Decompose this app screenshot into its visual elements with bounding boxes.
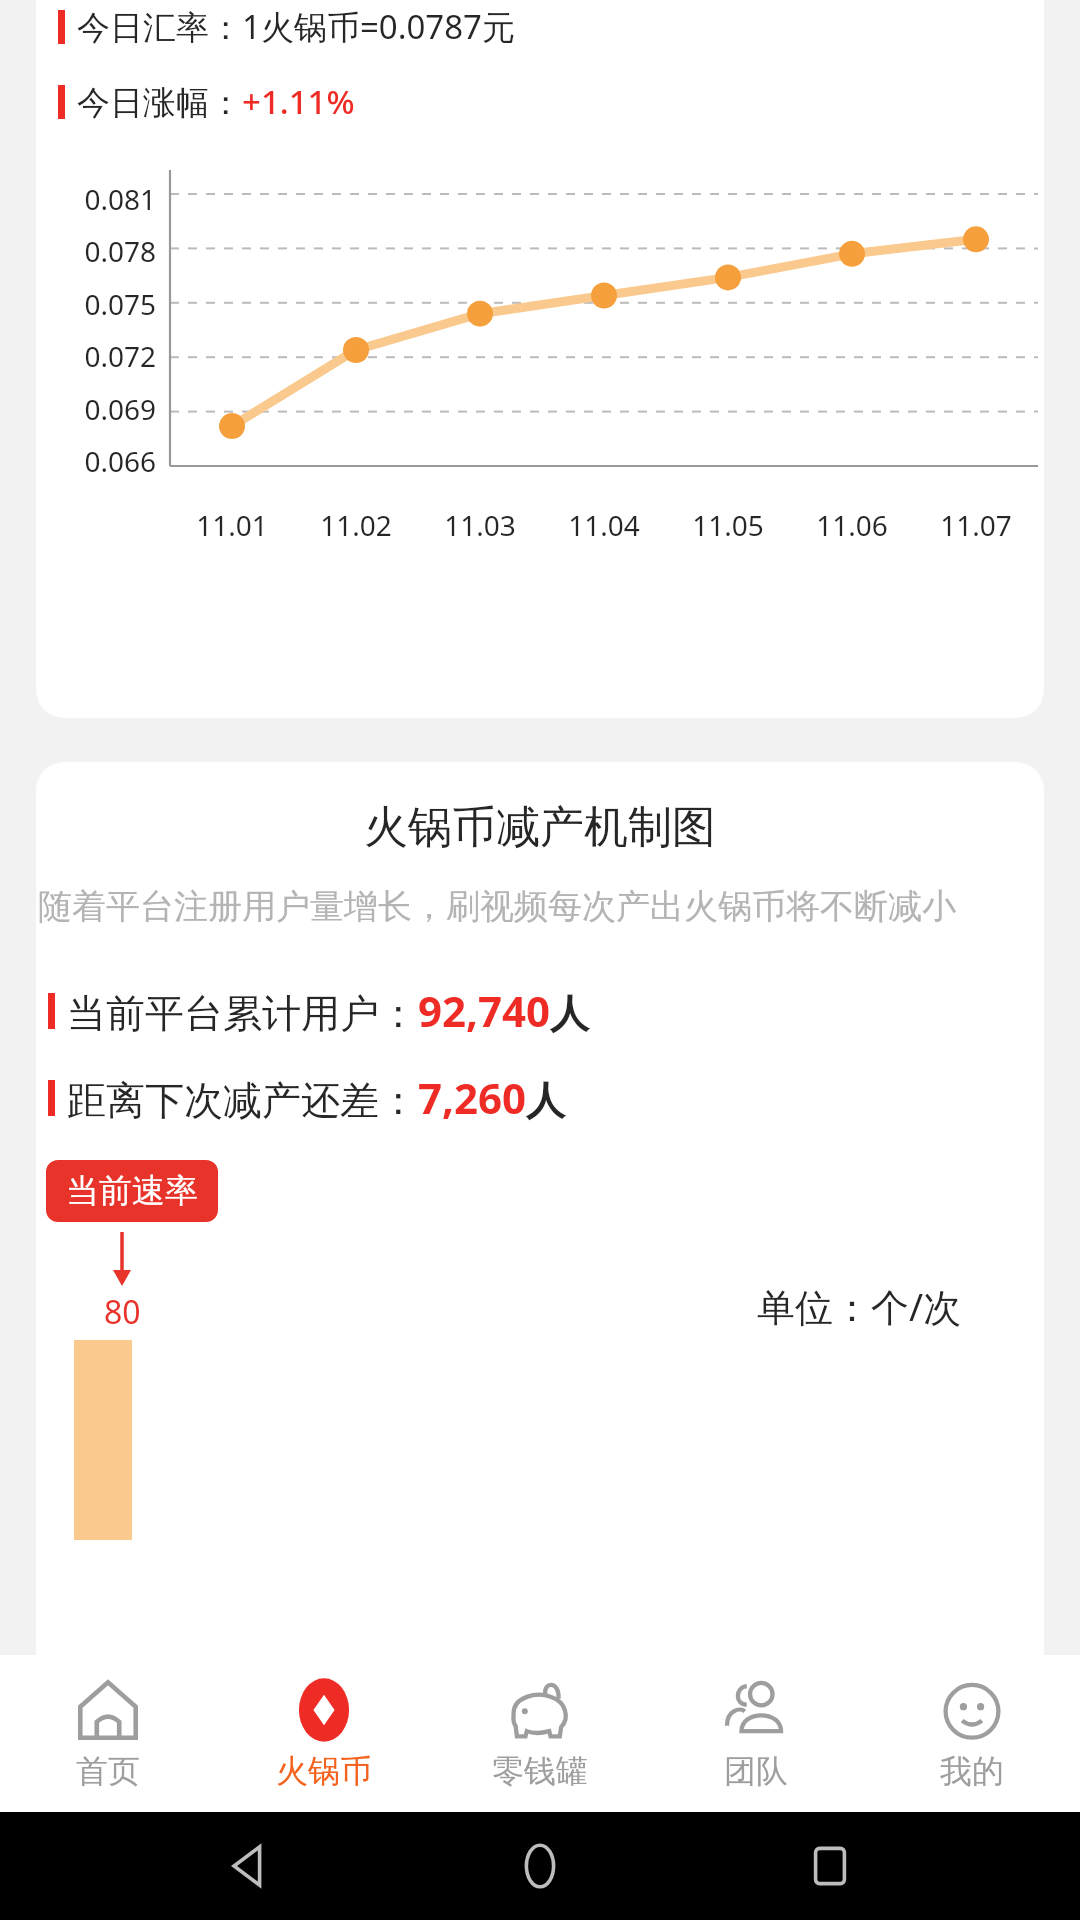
staticText: 今日涨幅：+1.11%: [77, 79, 355, 124]
staticText: 单位：个/次: [757, 1280, 962, 1332]
staticText: 团队: [724, 1751, 788, 1791]
staticText: 11.03: [418, 506, 542, 544]
staticText: 80: [104, 1290, 141, 1334]
staticText: 0.075: [36, 285, 156, 323]
staticText: 0.078: [36, 232, 156, 270]
button[interactable]: 团队: [648, 1655, 864, 1812]
staticText: 11.04: [542, 506, 666, 544]
staticText: 11.01: [170, 506, 294, 544]
button[interactable]: Home: [500, 1826, 580, 1906]
button[interactable]: 我的: [864, 1655, 1080, 1812]
staticText: 火锅币: [276, 1751, 372, 1791]
button[interactable]: 首页: [0, 1655, 216, 1812]
button[interactable]: 零钱罐: [432, 1655, 648, 1812]
staticText: 距离下次减产还差：7,260人: [67, 1069, 566, 1126]
staticText: 我的: [940, 1751, 1004, 1791]
button[interactable]: 当前速率: [46, 1160, 218, 1222]
staticText: 0.066: [36, 442, 156, 480]
staticText: 随着平台注册用户量增长，刷视频每次产出火锅币将不断减小: [38, 885, 1042, 928]
staticText: 11.02: [294, 506, 418, 544]
button[interactable]: 火锅币: [216, 1655, 432, 1812]
staticText: 零钱罐: [492, 1751, 588, 1791]
staticText: 火锅币减产机制图: [36, 800, 1044, 855]
staticText: 当前速率: [66, 1170, 198, 1212]
staticText: 当前平台累计用户：92,740人: [67, 982, 590, 1039]
staticText: 11.05: [666, 506, 790, 544]
button[interactable]: Back: [210, 1826, 290, 1906]
staticText: 0.069: [36, 390, 156, 428]
staticText: 首页: [76, 1751, 140, 1791]
staticText: 0.072: [36, 337, 156, 375]
staticText: 今日汇率：1火锅币=0.0787元: [77, 4, 515, 49]
staticText: 11.07: [914, 506, 1038, 544]
button[interactable]: Recents: [790, 1826, 870, 1906]
staticText: 11.06: [790, 506, 914, 544]
staticText: 0.081: [36, 180, 156, 218]
